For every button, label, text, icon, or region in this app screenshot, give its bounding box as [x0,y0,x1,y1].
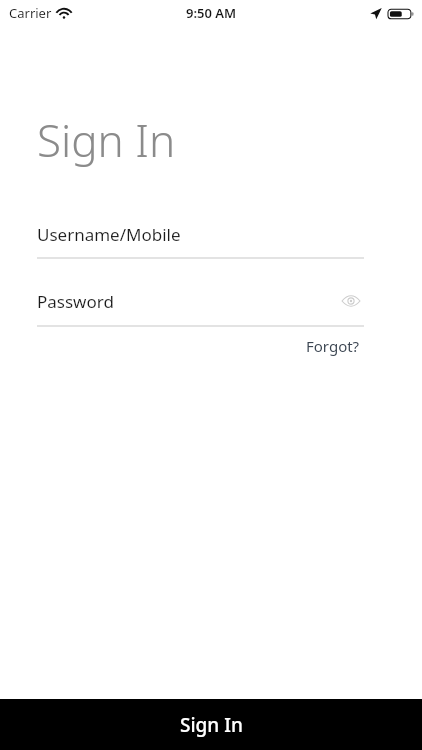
button[interactable]: Sign In [0,699,422,750]
button[interactable]: Forgot? [302,333,364,359]
staticText: Password [37,290,114,313]
button[interactable]: Show password [338,288,364,314]
staticText: Sign In [180,712,243,738]
other: Location [369,7,382,20]
staticText: Sign In [37,110,176,170]
staticText: Carrier [9,4,52,22]
button[interactable]: Username/Mobile [37,223,364,246]
staticText: 9:50 AM [186,4,237,22]
staticText: Forgot? [306,336,360,356]
staticText: Username/Mobile [37,223,181,246]
button[interactable]: Password [37,288,364,314]
